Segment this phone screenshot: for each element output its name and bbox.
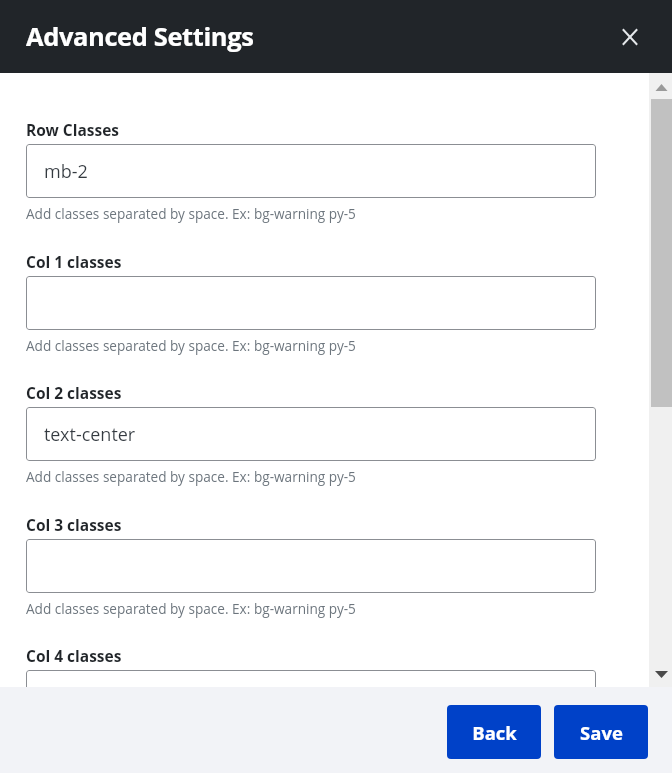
staticText: Advanced Settings — [26, 19, 254, 54]
staticText: Back — [472, 720, 517, 745]
staticText: Col 2 classes — [26, 382, 122, 403]
staticText: Add classes separated by space. Ex: bg-w… — [26, 204, 356, 223]
button[interactable] — [26, 670, 596, 724]
staticText: Save — [580, 720, 623, 745]
staticText: Add classes separated by space. Ex: bg-w… — [26, 336, 356, 355]
button[interactable] — [26, 276, 596, 330]
staticText: Row Classes — [26, 119, 120, 140]
button[interactable]: text-center — [26, 407, 596, 461]
button[interactable]: Scrollbar — [649, 73, 672, 687]
staticText: Col 3 classes — [26, 514, 122, 535]
staticText: Add classes separated by space. Ex: bg-w… — [26, 467, 356, 486]
staticText: Col 1 classes — [26, 251, 122, 272]
staticText: Add classes separated by space. Ex: bg-w… — [26, 599, 356, 618]
staticText: Col 4 classes — [26, 645, 122, 666]
staticText: text-center — [44, 422, 136, 447]
button[interactable] — [26, 539, 596, 593]
button[interactable]: Save — [554, 705, 648, 759]
button[interactable]: Back — [447, 705, 541, 759]
button[interactable]: Close — [615, 22, 645, 52]
button[interactable]: mb-2 — [26, 144, 596, 198]
staticText: mb-2 — [44, 159, 88, 184]
